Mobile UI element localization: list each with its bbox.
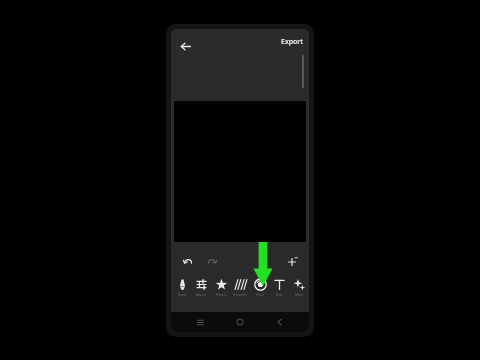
button[interactable]: Undo bbox=[179, 252, 197, 270]
button[interactable]: Home bbox=[229, 314, 251, 330]
button[interactable]: Text bbox=[270, 278, 288, 297]
button[interactable]: Add bbox=[283, 253, 301, 271]
button[interactable]: More bbox=[290, 278, 308, 297]
staticText: Adjust bbox=[192, 292, 210, 297]
button[interactable]: Redo bbox=[203, 252, 221, 270]
button[interactable]: Adjust bbox=[192, 278, 210, 297]
staticText: Text bbox=[270, 292, 288, 297]
button[interactable]: Retouch bbox=[231, 278, 249, 297]
button[interactable]: Effects bbox=[212, 278, 230, 297]
button[interactable]: Recents bbox=[189, 314, 211, 330]
staticText: Filter bbox=[251, 292, 269, 297]
staticText: Retouch bbox=[231, 292, 249, 297]
button[interactable]: Back bbox=[175, 36, 195, 56]
staticText: Draw bbox=[173, 292, 191, 297]
button[interactable]: Export bbox=[281, 37, 303, 47]
button[interactable]: Draw bbox=[173, 278, 191, 297]
staticText: More bbox=[290, 292, 308, 297]
staticText: Effects bbox=[212, 292, 230, 297]
staticText: Export bbox=[281, 37, 303, 47]
button[interactable]: Back bbox=[269, 314, 291, 330]
button[interactable]: Filter bbox=[251, 278, 269, 297]
